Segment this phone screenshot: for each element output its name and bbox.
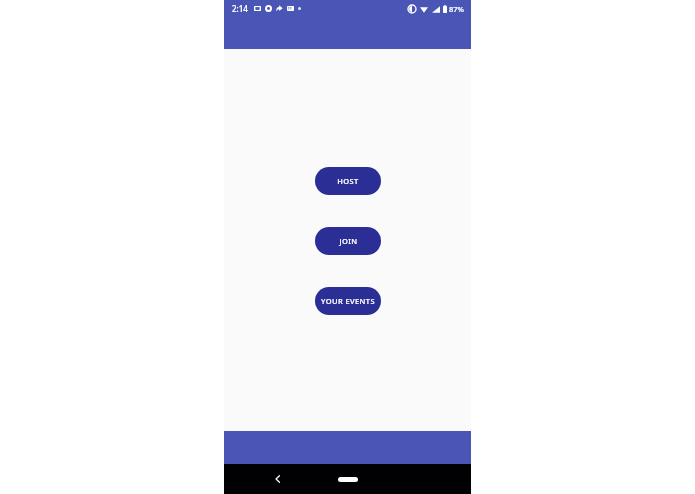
button[interactable]: Home xyxy=(328,472,368,486)
staticText: JOIN xyxy=(339,236,358,246)
button[interactable]: Back xyxy=(271,472,285,486)
staticText: YOUR EVENTS xyxy=(321,296,375,306)
staticText: HOST xyxy=(337,176,359,186)
button[interactable]: YOUR EVENTS xyxy=(315,287,381,315)
staticText: 2:14 xyxy=(232,3,248,14)
button[interactable]: JOIN xyxy=(315,227,381,255)
button[interactable]: HOST xyxy=(315,167,381,195)
staticText: 87% xyxy=(449,4,464,14)
